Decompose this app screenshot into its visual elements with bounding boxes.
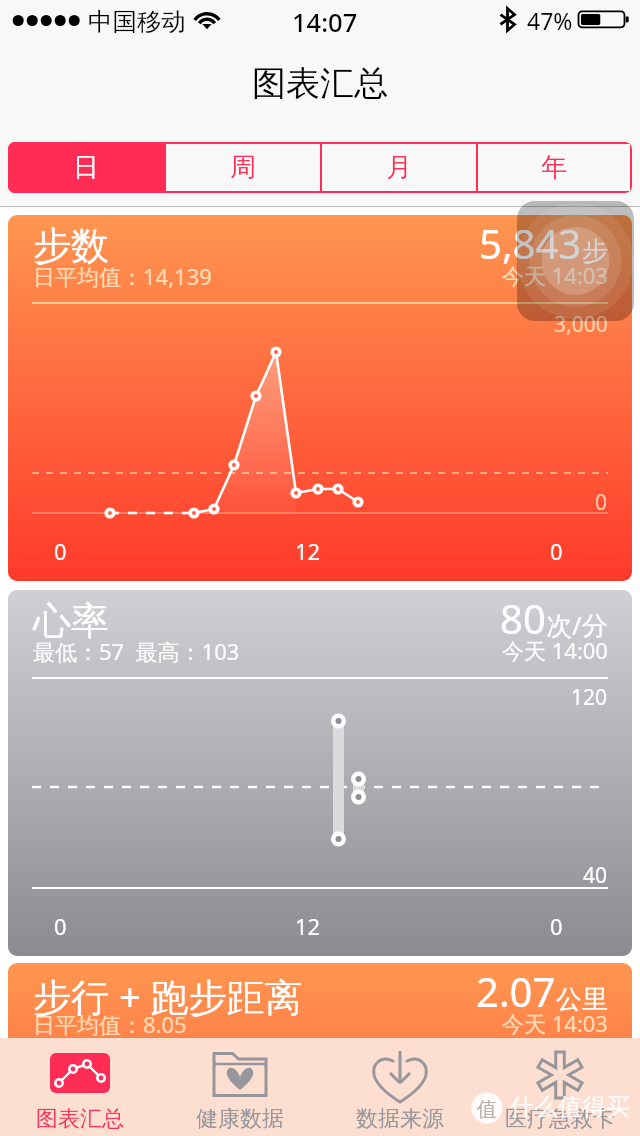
staticText: 120 [571,683,608,712]
staticText: 次/分 [546,607,608,643]
staticText: 0 [54,536,67,566]
staticText: 健康数据 [196,1105,284,1133]
button[interactable]: 步数 [8,215,632,581]
button[interactable]: 心率 [8,590,632,956]
staticText: 0 [54,911,67,941]
staticText: 年 [541,151,567,184]
staticText: 0 [550,536,563,566]
button[interactable]: 日 [8,142,164,193]
staticText: 心率 [33,597,109,645]
staticText: 0 [550,911,563,941]
button[interactable]: 周 [166,144,320,191]
staticText: 值 [477,1097,497,1122]
button[interactable]: Health Data [160,1038,320,1136]
staticText: 今天 14:03 [502,260,608,290]
staticText: 0 [595,488,608,517]
button[interactable]: 步行 + 跑步距离 [8,963,632,1136]
button[interactable]: Summary [0,1038,160,1136]
staticText: 5,843 [479,216,582,270]
staticText: 中国移动 [88,6,186,37]
staticText: 40 [583,861,608,890]
staticText: 47% [527,5,573,36]
button[interactable]: 年 [478,144,630,191]
staticText: 日平均值：8.05 [33,1009,187,1039]
staticText: 周 [230,151,256,184]
button[interactable]: 月 [322,144,476,191]
staticText: 医疗急救卡 [505,1105,615,1133]
button[interactable]: Medical ID [480,1038,640,1136]
staticText: 数据来源 [356,1105,444,1133]
staticText: 12 [295,536,321,566]
staticText: 14:07 [292,5,358,40]
staticText: 步 [582,235,608,268]
staticText: 什么值得买 [510,1092,630,1122]
staticText: 日 [73,151,99,184]
staticText: 日平均值：14,139 [33,261,212,291]
staticText: 步行 + 跑步距离 [33,970,303,1022]
staticText: 80 [500,591,546,645]
button[interactable]: Sources [320,1038,480,1136]
staticText: 最低：57 最高：103 [33,636,240,666]
staticText: 图表汇总 [36,1105,124,1133]
staticText: 今天 14:03 [502,1008,608,1038]
staticText: 公里 [556,983,608,1016]
staticText: 月 [386,151,412,184]
staticText: 12 [295,911,321,941]
staticText: 步数 [33,222,109,270]
staticText: 图表汇总 [252,62,388,105]
staticText: 2.07 [476,964,556,1018]
staticText: 今天 14:00 [502,635,608,665]
staticText: 3,000 [554,310,608,339]
